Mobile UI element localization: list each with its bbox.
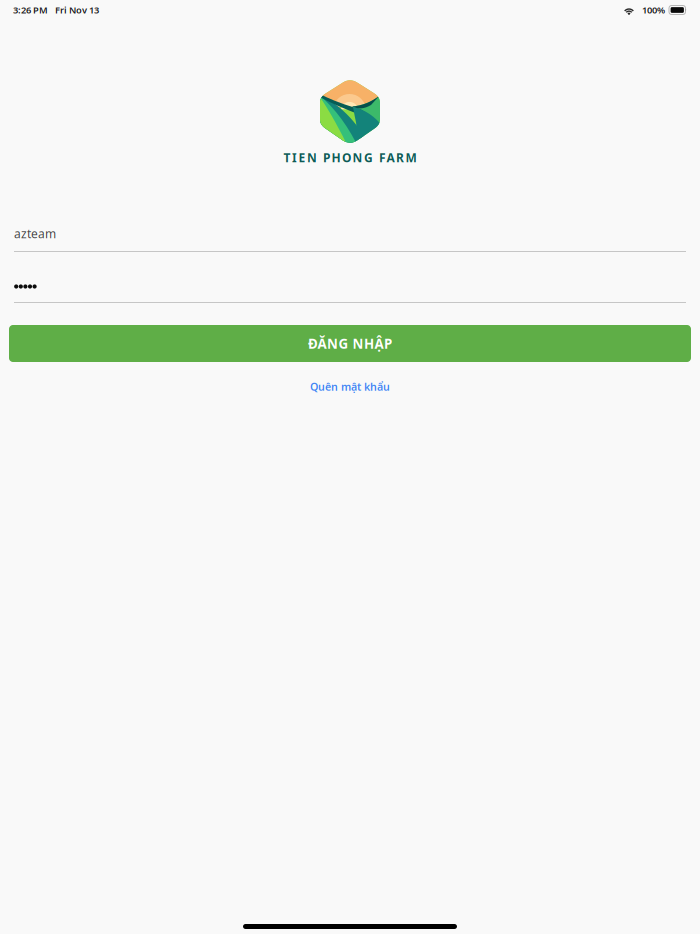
button[interactable]: ĐĂNG NHẬP <box>9 325 691 362</box>
staticText: TIEN PHONG FARM <box>283 149 416 165</box>
staticText: Fri Nov 13 <box>55 4 99 16</box>
staticText: 3:26 PM <box>13 4 48 16</box>
staticText: 100% <box>642 4 665 16</box>
button[interactable]: Quên mật khẩu <box>250 380 450 393</box>
staticText: Quên mật khẩu <box>310 379 390 394</box>
staticText: azteam <box>14 225 56 241</box>
staticText: ĐĂNG NHẬP <box>308 335 392 352</box>
